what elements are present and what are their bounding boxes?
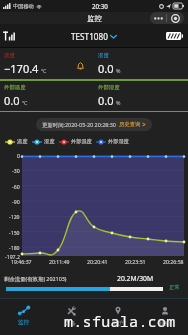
staticText: 0	[17, 152, 20, 159]
staticText: -120	[9, 213, 20, 220]
staticText: ℃	[22, 99, 28, 106]
staticText: %	[116, 67, 121, 74]
staticText: -197.2	[5, 253, 20, 260]
button[interactable]: Devices tab	[47, 299, 94, 335]
staticText: 20:20:41	[87, 258, 108, 265]
staticText: 19:46:37	[11, 258, 32, 265]
staticText: 20:23:51	[125, 258, 146, 265]
staticText: 设备	[65, 320, 77, 327]
staticText: %	[116, 99, 121, 106]
staticText: 我的	[159, 320, 171, 327]
button[interactable]: TEST1080	[68, 28, 120, 45]
staticText: -180	[9, 244, 20, 251]
button[interactable]: Maintenance tab	[94, 299, 141, 335]
staticText: 更新时间:2020-05-20 20:28:30	[42, 121, 116, 128]
staticText: m.sfuala.com	[64, 311, 176, 331]
staticText: 湿度	[98, 52, 109, 59]
staticText: TEST1080	[71, 31, 108, 42]
staticText: 外部湿度	[98, 84, 120, 91]
button[interactable]: History query	[119, 121, 146, 128]
staticText: 监控	[18, 319, 30, 326]
staticText: -60	[12, 183, 20, 190]
button[interactable]: More options	[150, 12, 166, 24]
staticText: 中国移动	[13, 3, 34, 10]
button[interactable]: Profile tab	[141, 299, 188, 335]
staticText: 外部温度	[71, 138, 92, 145]
staticText: 20:11:49	[49, 258, 70, 265]
staticText: 20:26:58	[163, 258, 184, 265]
staticText: 历史查询	[119, 121, 141, 128]
staticText: 20.2M/30M	[117, 274, 154, 283]
staticText: 温度	[4, 52, 15, 59]
staticText: ℃	[41, 67, 47, 74]
staticText: 湿度	[44, 138, 55, 145]
staticText: 监控	[87, 14, 102, 23]
staticText: 外部温度	[4, 84, 26, 91]
staticText: 剩余流量(有效期|202103)	[4, 275, 67, 282]
staticText: −170.4	[4, 61, 39, 76]
staticText: 0.0	[98, 93, 114, 108]
staticText: 外部湿度	[108, 138, 129, 145]
staticText: 正常	[169, 284, 180, 291]
staticText: -150	[9, 229, 20, 236]
staticText: 0.0	[4, 93, 20, 108]
button[interactable]: Close app	[167, 12, 184, 24]
button[interactable]: Monitoring tab	[0, 299, 47, 335]
staticText: 0.0	[98, 61, 114, 76]
staticText: 20:30	[92, 2, 108, 10]
button[interactable]: Temperature alarm	[75, 60, 86, 71]
staticText: -30	[12, 167, 20, 174]
staticText: 温度	[17, 138, 28, 145]
staticText: 维护	[112, 320, 124, 327]
staticText: -90	[12, 198, 20, 205]
